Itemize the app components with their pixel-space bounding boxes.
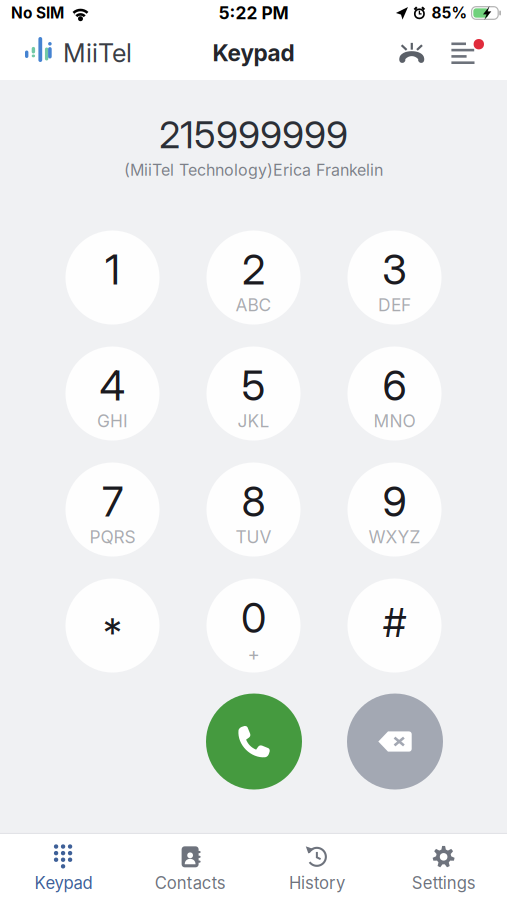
staticText: WXYZ [368,526,420,547]
staticText: (MiiTel Technology)Erica Frankelin [124,160,383,180]
staticText: + [247,643,259,665]
button[interactable]: # [347,578,441,672]
staticText: 8 [241,476,265,526]
staticText: Keypad [34,873,92,893]
staticText: 215999999 [159,112,348,157]
button[interactable]: Contacts [127,834,254,900]
button[interactable]: 0 [206,578,300,672]
button[interactable]: Settings [380,834,507,900]
staticText: 0 [241,593,266,643]
button[interactable]: 7 [65,462,159,556]
staticText: 3 [382,244,407,294]
button[interactable]: 8 [206,462,300,556]
staticText: 9 [382,476,406,526]
staticText: 1 [105,244,120,294]
staticText: DEF [378,294,411,315]
staticText: Settings [412,873,476,893]
staticText: 7 [102,476,123,526]
button[interactable]: Delete [347,693,443,789]
staticText: PQRS [89,526,135,547]
button[interactable]: Hang up [399,34,425,71]
staticText: MNO [373,410,415,431]
staticText: GHI [97,410,128,431]
staticText: 6 [382,360,406,410]
staticText: Keypad [212,39,294,67]
staticText: 5:22 PM [218,2,288,23]
button[interactable]: 9 [347,462,441,556]
staticText: 4 [99,360,125,410]
button[interactable]: 2 [206,230,300,324]
staticText: 5 [241,360,265,410]
staticText: 2 [242,244,265,294]
button[interactable]: History [253,834,380,900]
button[interactable]: 3 [347,230,441,324]
button[interactable]: * [65,578,159,672]
staticText: # [383,599,406,646]
button[interactable]: 4 [65,346,159,440]
staticText: * [103,608,122,657]
button[interactable]: Keypad [0,834,127,900]
staticText: ABC [235,294,271,315]
staticText: 85% [432,4,468,22]
button[interactable]: 5 [206,346,300,440]
staticText: TUV [235,526,271,547]
staticText: MiiTel [63,38,132,68]
button[interactable]: Call [206,693,302,789]
button[interactable]: Menu [425,31,484,75]
button[interactable]: 1 [65,230,159,324]
staticText: History [289,873,345,893]
staticText: JKL [237,410,269,431]
button[interactable]: 6 [347,346,441,440]
staticText: No SIM [11,4,64,22]
staticText: Contacts [155,873,226,893]
